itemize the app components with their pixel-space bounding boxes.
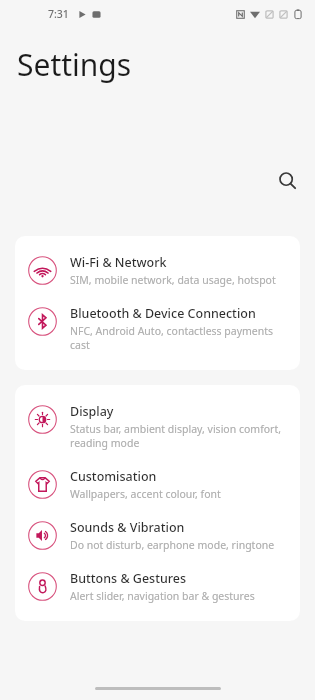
staticText: Do not disturb, earphone mode, ringtone	[70, 538, 275, 552]
staticText: Status bar, ambient display, vision comf…	[70, 422, 282, 450]
staticText: Settings	[17, 44, 132, 85]
button[interactable]: Display	[15, 394, 300, 459]
staticText: SIM, mobile network, data usage, hotspot	[70, 273, 276, 287]
button[interactable]: Bluetooth & Device Connection	[15, 296, 300, 361]
staticText: 7:31	[48, 7, 69, 21]
staticText: Wi-Fi & Network	[70, 254, 167, 271]
staticText: Wallpapers, accent colour, font	[70, 487, 221, 501]
staticText: Buttons & Gestures	[70, 570, 187, 587]
staticText: Bluetooth & Device Connection	[70, 305, 256, 322]
staticText: Sounds & Vibration	[70, 519, 185, 536]
button[interactable]: Search	[270, 163, 304, 197]
staticText: Alert slider, navigation bar & gestures	[70, 589, 255, 603]
staticText: Customisation	[70, 468, 157, 485]
staticText: Display	[70, 403, 114, 420]
button[interactable]: Buttons & Gestures	[15, 561, 300, 612]
staticText: NFC, Android Auto, contactless payments …	[70, 324, 274, 352]
button[interactable]: Sounds & Vibration	[15, 510, 300, 561]
button[interactable]: Customisation	[15, 459, 300, 510]
button[interactable]: Wi-Fi & Network	[15, 245, 300, 296]
